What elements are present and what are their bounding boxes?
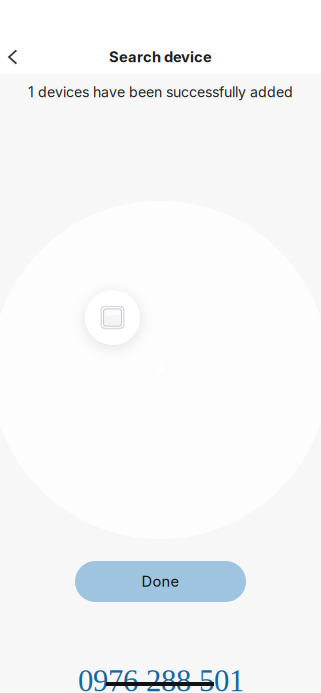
staticText: Done (141, 573, 179, 590)
button[interactable]: 0976 288 501 (61, 666, 261, 693)
button[interactable]: Done (75, 561, 246, 602)
button[interactable]: Back (0, 35, 29, 79)
staticText: Search device (109, 48, 212, 66)
staticText: 0976 288 501 (78, 664, 244, 693)
staticText: 1 devices have been successfully added (28, 83, 293, 100)
